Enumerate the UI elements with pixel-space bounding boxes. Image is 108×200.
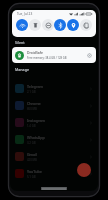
staticText: 420 MB [27, 158, 37, 162]
button[interactable]: YouTube [10, 165, 98, 182]
button[interactable]: Instagram [10, 114, 98, 131]
staticText: WhatsApp [27, 135, 45, 140]
staticText: Gmail [27, 152, 38, 157]
button[interactable]: Auto-rotate [80, 19, 92, 31]
staticText: Chrome [27, 101, 41, 106]
staticText: Free memory: 38.4 GB / 128 GB [27, 56, 67, 60]
button[interactable]: Gmail [10, 148, 98, 165]
button[interactable]: Create [77, 163, 91, 177]
button[interactable]: Bluetooth [54, 19, 66, 31]
staticText: 2.1 GB [27, 90, 36, 94]
button[interactable]: Wi-Fi [16, 19, 28, 31]
button[interactable]: Telegram [10, 80, 98, 97]
staticText: 3.2 GB [27, 141, 36, 145]
staticText: Tue, Jul 23 [17, 12, 33, 16]
staticText: Instagram [27, 118, 45, 123]
staticText: Manage [15, 67, 29, 72]
button[interactable]: Settings [85, 51, 93, 59]
staticText: 1.4 GB [27, 124, 36, 128]
button[interactable]: Flashlight [29, 19, 41, 31]
button[interactable]: Do not disturb [42, 19, 54, 31]
button[interactable]: DroidSafe [12, 47, 96, 63]
button[interactable]: WhatsApp [10, 131, 98, 148]
staticText: Telegram [27, 84, 43, 89]
staticText: DroidSafe [27, 50, 43, 55]
staticText: YouTube [27, 169, 42, 174]
staticText: 5.1 GB [27, 175, 36, 179]
button[interactable]: Location [67, 19, 79, 31]
button[interactable]: Chrome [10, 97, 98, 114]
staticText: 860 MB [27, 107, 37, 111]
staticText: Silent [15, 40, 25, 45]
